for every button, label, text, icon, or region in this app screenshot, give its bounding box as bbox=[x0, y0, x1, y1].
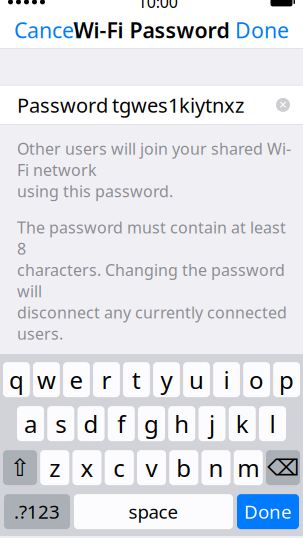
button[interactable]: m bbox=[234, 450, 263, 485]
staticText: ✕ bbox=[278, 99, 287, 111]
staticText: i bbox=[224, 364, 230, 396]
staticText: l bbox=[269, 408, 275, 440]
button[interactable]: g bbox=[138, 406, 165, 441]
button[interactable]: h bbox=[168, 406, 195, 441]
staticText: c bbox=[113, 452, 125, 484]
button[interactable]: v bbox=[137, 450, 166, 485]
staticText: k bbox=[236, 408, 249, 440]
staticText: .?123 bbox=[14, 499, 60, 524]
button[interactable]: z bbox=[40, 450, 69, 485]
staticText: j bbox=[209, 408, 215, 440]
button[interactable]: s bbox=[47, 406, 74, 441]
staticText: h bbox=[174, 408, 189, 440]
staticText: s bbox=[55, 408, 66, 440]
staticText: d bbox=[83, 408, 98, 440]
staticText: using this password. bbox=[17, 180, 173, 202]
button[interactable]: f bbox=[108, 406, 135, 441]
staticText: b bbox=[176, 452, 191, 484]
button[interactable]: u bbox=[183, 362, 210, 397]
staticText: disconnect any currently connected users… bbox=[17, 302, 287, 344]
staticText: u bbox=[189, 364, 204, 396]
button[interactable]: r bbox=[93, 362, 120, 397]
button[interactable]: d bbox=[77, 406, 104, 441]
staticText: e bbox=[69, 364, 83, 396]
staticText: Done bbox=[235, 16, 289, 44]
staticText: a bbox=[24, 408, 37, 440]
button[interactable]: q bbox=[3, 362, 30, 397]
staticText: x bbox=[80, 452, 93, 484]
button[interactable]: o bbox=[243, 362, 270, 397]
staticText: Wi-Fi Password bbox=[73, 16, 229, 44]
button[interactable]: w bbox=[33, 362, 60, 397]
button[interactable]: Clear text bbox=[269, 91, 297, 119]
button[interactable]: Shift bbox=[3, 450, 37, 485]
button[interactable]: Delete bbox=[266, 450, 300, 485]
button[interactable]: t bbox=[123, 362, 150, 397]
button[interactable]: a bbox=[17, 406, 44, 441]
staticText: characters. Changing the password will bbox=[17, 259, 285, 302]
staticText: f bbox=[117, 408, 125, 440]
button[interactable]: n bbox=[201, 450, 231, 485]
staticText: Password bbox=[17, 92, 108, 118]
staticText: 10:00 bbox=[138, 0, 178, 12]
button[interactable]: b bbox=[169, 450, 198, 485]
button[interactable]: space bbox=[74, 494, 233, 529]
staticText: o bbox=[249, 364, 264, 396]
button[interactable]: y bbox=[153, 362, 180, 397]
button[interactable]: j bbox=[198, 406, 225, 441]
staticText: tgwes1kiytnxz bbox=[112, 92, 244, 118]
staticText: z bbox=[49, 452, 60, 484]
staticText: m bbox=[237, 452, 259, 484]
staticText: v bbox=[145, 452, 157, 484]
button[interactable]: Done bbox=[227, 8, 297, 52]
staticText: y bbox=[160, 364, 172, 396]
button[interactable]: e bbox=[63, 362, 90, 397]
button[interactable]: x bbox=[72, 450, 102, 485]
button[interactable]: l bbox=[259, 406, 286, 441]
staticText: w bbox=[37, 364, 56, 396]
button[interactable]: Cancel bbox=[6, 8, 88, 52]
staticText: q bbox=[9, 364, 24, 396]
staticText: g bbox=[144, 408, 159, 440]
staticText: Cancel bbox=[14, 16, 80, 44]
button[interactable]: c bbox=[105, 450, 134, 485]
staticText: ⌫ bbox=[267, 455, 299, 480]
button[interactable]: .?123 bbox=[4, 494, 70, 529]
button[interactable]: Done bbox=[237, 494, 299, 529]
button[interactable]: p bbox=[273, 362, 300, 397]
staticText: The password must contain at least 8 bbox=[17, 217, 286, 259]
staticText: Done bbox=[244, 499, 292, 524]
staticText: p bbox=[279, 364, 294, 396]
button[interactable]: k bbox=[229, 406, 256, 441]
staticText: r bbox=[101, 364, 111, 396]
staticText: Other users will join your shared Wi-Fi … bbox=[17, 138, 291, 180]
staticText: n bbox=[208, 452, 223, 484]
button[interactable]: i bbox=[213, 362, 240, 397]
staticText: ⇧ bbox=[10, 454, 30, 481]
staticText: t bbox=[132, 364, 141, 396]
staticText: space bbox=[128, 499, 178, 524]
